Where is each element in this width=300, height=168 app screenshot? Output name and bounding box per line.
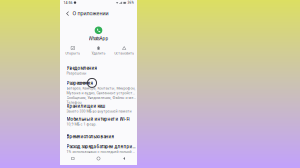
button[interactable]: Назад (111, 152, 137, 165)
staticText: Удалить (91, 51, 105, 55)
staticText: Уведомления (66, 65, 96, 71)
staticText: 14:56 (64, 1, 73, 5)
staticText: Мобильный интернет и Wi-Fi (66, 116, 129, 122)
staticText: Время использования (66, 134, 113, 139)
button[interactable]: Время использования (66, 134, 135, 139)
button[interactable]: Расход заряда батареи для приложений (66, 144, 135, 154)
button[interactable]: Хранилище и кеш (66, 103, 135, 113)
staticText: Батарея, Камера, Контакты, Микрофон, (66, 86, 135, 90)
staticText: Сообщения, Уведомления, Файлы и медиа, (66, 96, 135, 100)
staticText: Остановить (114, 51, 134, 55)
button[interactable]: Открыть (60, 46, 86, 55)
staticText: Хранилище и кеш (66, 103, 105, 109)
staticText: 36% (127, 1, 133, 5)
staticText: Разрешения (66, 80, 92, 86)
button[interactable]: Удалить (86, 46, 111, 55)
button[interactable]: Разрешения (66, 80, 135, 105)
staticText: Занято 330 МБ во внутренней памяти (66, 109, 131, 113)
staticText: WhatsApp (88, 36, 108, 41)
button[interactable]: Уведомления (66, 65, 135, 75)
button[interactable]: Остановить (111, 46, 137, 55)
staticText: 10,9 МБ с 1 февр. (66, 122, 96, 126)
staticText: 1% использовано с последней полной заряд… (66, 150, 135, 154)
button[interactable]: Домой (86, 152, 111, 165)
staticText: О приложении (72, 10, 108, 17)
staticText: Телефон (66, 100, 81, 105)
staticText: Разрешены (66, 71, 86, 75)
button[interactable]: Мобильный интернет и Wi-Fi (66, 116, 135, 126)
staticText: Музыка и аудио, Связанные устройства, (66, 91, 135, 95)
staticText: Открыть (65, 51, 80, 55)
staticText: Расход заряда батареи для приложений (66, 144, 135, 149)
button[interactable]: Недавние (60, 152, 86, 165)
button[interactable]: Назад (63, 9, 72, 18)
